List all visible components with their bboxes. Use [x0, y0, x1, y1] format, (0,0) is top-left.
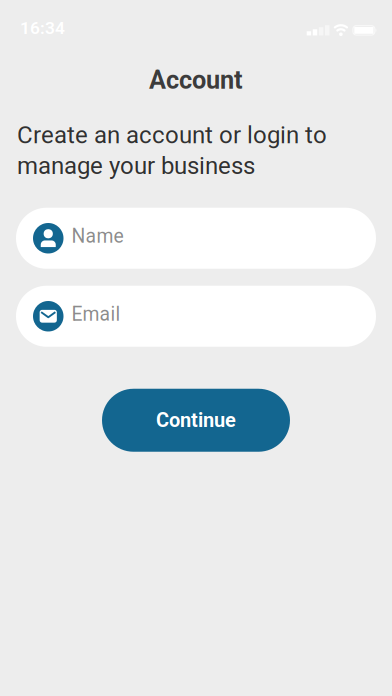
- button[interactable]: Email: [16, 286, 376, 347]
- staticText: Email: [71, 303, 120, 325]
- staticText: Account: [149, 65, 243, 95]
- staticText: 16:34: [20, 18, 65, 38]
- staticText: Name: [71, 225, 123, 247]
- staticText: Continue: [156, 408, 236, 432]
- staticText: Create an account or login to manage you…: [17, 121, 327, 180]
- button[interactable]: Name: [16, 208, 376, 269]
- button[interactable]: Continue: [102, 389, 290, 452]
